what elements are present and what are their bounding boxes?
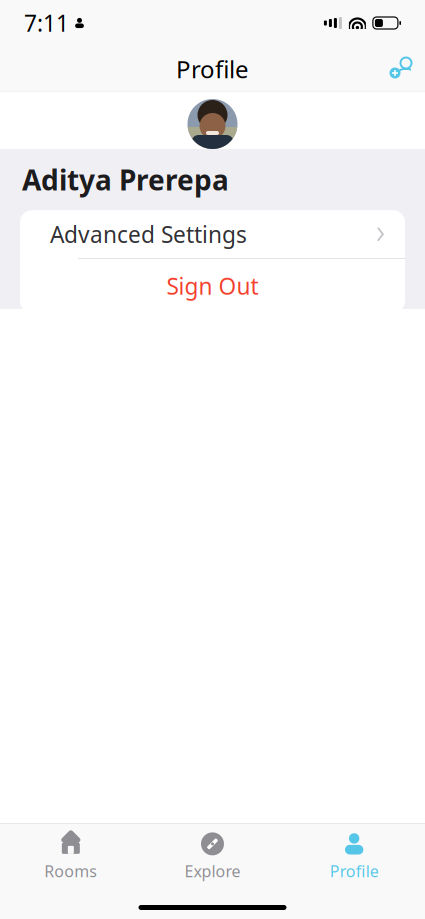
staticText: Profile [176,53,249,85]
staticText: Sign Out [166,271,258,301]
staticText: Rooms [44,860,97,882]
button[interactable]: Sign Out [20,259,405,313]
staticText: Aditya Prerepa [22,161,229,198]
button[interactable]: Advanced Settings [20,210,405,258]
button[interactable]: Explore [142,831,283,883]
button[interactable]: Add Person [379,49,425,89]
button[interactable]: Profile [283,831,425,883]
staticText: Advanced Settings [50,219,247,249]
staticText: 7:11 [24,8,69,38]
button[interactable]: Rooms [0,831,142,883]
staticText: Explore [184,860,240,882]
staticText: Profile [330,860,379,882]
